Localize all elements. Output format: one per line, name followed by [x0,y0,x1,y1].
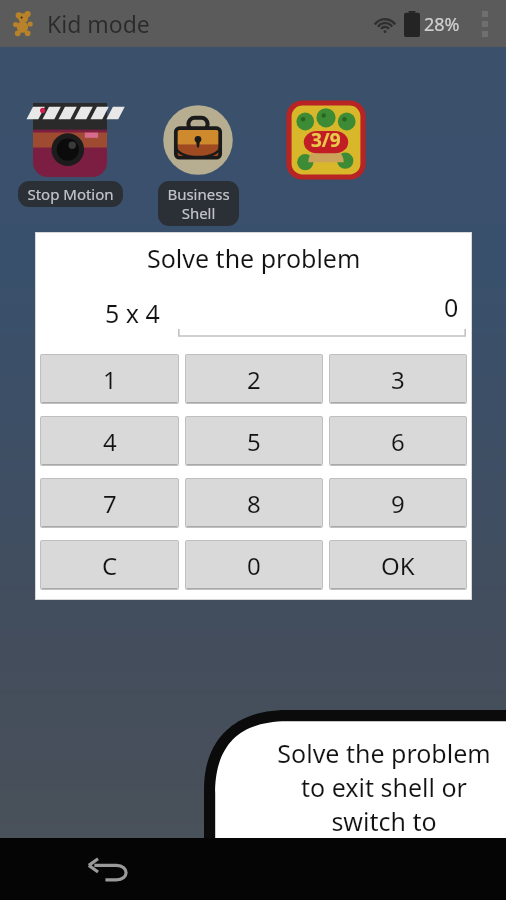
staticText: 4 [103,425,117,458]
staticText: 5 x 4 [105,296,160,330]
button[interactable]: 3 [329,354,467,404]
button[interactable]: 0 [185,540,323,590]
staticText: 9 [391,487,405,520]
staticText: 6 [391,425,405,458]
staticText: 2 [247,363,261,396]
button[interactable]: 9 [329,478,467,528]
staticText: Kid mode [47,8,150,39]
staticText: Solve the problem to exit shell or switc… [277,736,491,872]
staticText: 0 [444,290,459,324]
staticText: Solve the problem [147,241,361,275]
staticText: 28% [424,12,460,37]
staticText: Business Shell [167,184,230,223]
button[interactable]: 4 [40,416,179,466]
button[interactable]: Stop Motion [6,103,134,207]
button[interactable]: 7 [40,478,179,528]
button[interactable]: Business Shell [134,103,262,226]
button[interactable]: 2 [185,354,323,404]
staticText: 3/9 [311,127,341,153]
staticText: 3/9 царство [283,258,369,278]
button[interactable]: Back [78,838,142,900]
button[interactable]: 5 [185,416,323,466]
staticText: OK [381,549,415,582]
staticText: Stop Motion [27,184,114,204]
staticText: 5 [247,425,261,458]
button[interactable]: 6 [329,416,467,466]
staticText: 1 [103,363,117,396]
staticText: 3 [391,363,405,396]
button[interactable]: 3/9 [262,103,390,281]
button[interactable]: C [40,540,179,590]
button[interactable]: 1 [40,354,179,404]
button[interactable]: 8 [185,478,323,528]
staticText: 0 [247,549,261,582]
staticText: C [102,549,118,582]
button[interactable]: OK [329,540,467,590]
staticText: 8 [247,487,261,520]
button[interactable]: More options [474,4,496,44]
staticText: 7 [103,487,117,520]
